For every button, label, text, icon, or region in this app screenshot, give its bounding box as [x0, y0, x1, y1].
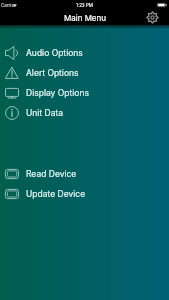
- button[interactable]: Display Options: [0, 83, 169, 102]
- button[interactable]: Settings: [146, 11, 159, 24]
- staticText: Alert Options: [26, 68, 79, 78]
- button[interactable]: Audio Options: [0, 43, 169, 62]
- button[interactable]: Update Device: [0, 184, 169, 203]
- staticText: Read Device: [26, 169, 77, 179]
- staticText: Display Options: [26, 88, 89, 98]
- staticText: Main Menu: [64, 13, 106, 23]
- staticText: Update Device: [26, 189, 86, 199]
- button[interactable]: Alert Options: [0, 63, 169, 82]
- staticText: Unit Data: [26, 108, 64, 118]
- staticText: Carrier: [1, 3, 16, 8]
- button[interactable]: Unit Data: [0, 103, 169, 122]
- staticText: 1:23 PM: [76, 3, 93, 8]
- button[interactable]: Read Device: [0, 164, 169, 183]
- staticText: Audio Options: [26, 48, 83, 58]
